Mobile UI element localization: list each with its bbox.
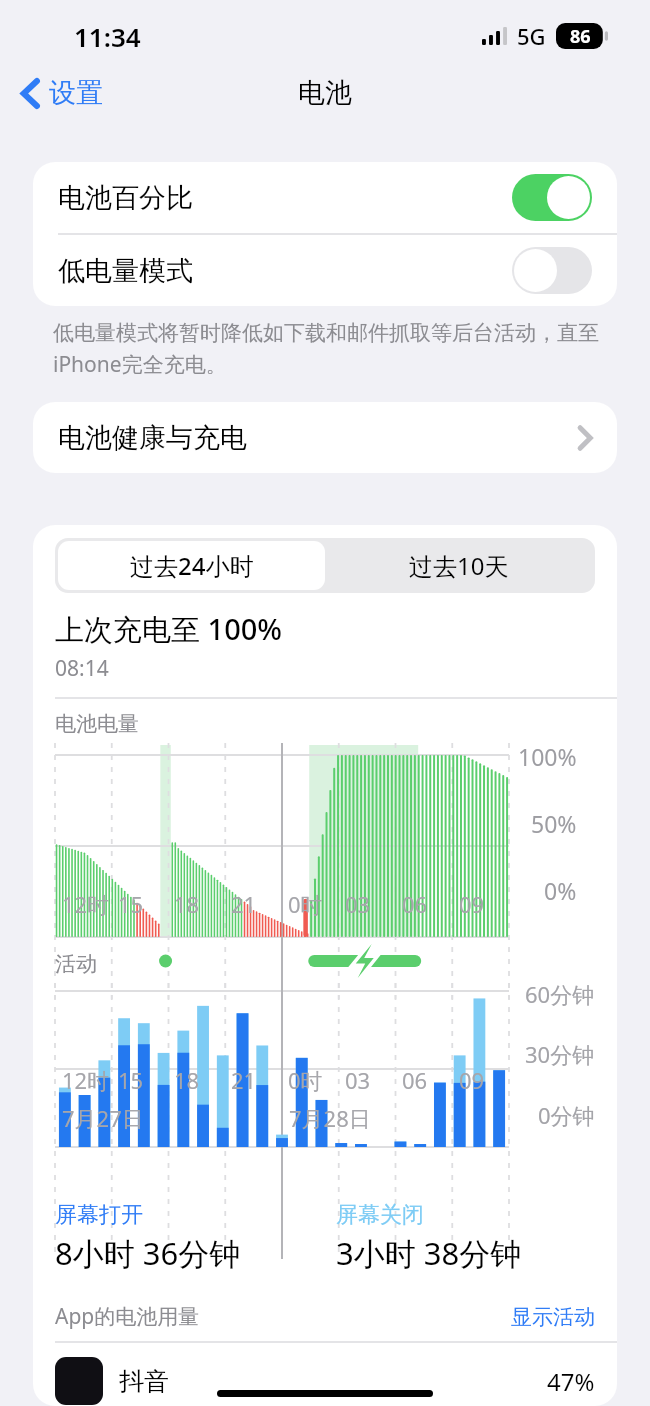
staticText: App的电池用量: [55, 1302, 511, 1331]
staticText: 8小时 36分钟: [55, 1232, 241, 1274]
staticText: 3小时 38分钟: [336, 1232, 522, 1274]
staticText: 21: [231, 1065, 257, 1095]
staticText: 03: [345, 1065, 371, 1095]
staticText: 0分钟: [538, 1100, 595, 1130]
button[interactable]: 过去24小时: [58, 541, 325, 590]
staticText: 低电量模式将暂时降低如下载和邮件抓取等后台活动，直至 iPhone完全充电。: [53, 320, 599, 378]
staticText: 50%: [531, 808, 577, 839]
staticText: 08:14: [55, 654, 109, 683]
button[interactable]: 设置: [16, 68, 109, 118]
staticText: 电池电量: [55, 711, 139, 737]
staticText: 屏幕关闭: [336, 1201, 424, 1229]
staticText: 电池: [298, 76, 352, 110]
staticText: 09: [459, 889, 485, 919]
staticText: 30分钟: [525, 1039, 595, 1069]
staticText: 0时: [288, 1065, 323, 1095]
button[interactable]: 电池健康与充电: [33, 402, 617, 473]
staticText: 7月28日: [289, 1103, 371, 1133]
button[interactable]: 电池百分比: [33, 162, 617, 233]
button[interactable]: 过去10天: [325, 541, 592, 590]
button[interactable]: 显示活动: [511, 1304, 595, 1330]
staticText: 电池健康与充电: [58, 421, 578, 455]
staticText: 活动: [55, 951, 97, 977]
staticText: 0%: [544, 875, 577, 906]
staticText: 47%: [547, 1365, 595, 1398]
staticText: 15: [118, 1065, 144, 1095]
staticText: 15: [118, 889, 144, 919]
staticText: 过去24小时: [130, 549, 254, 582]
staticText: 上次充电至 100%: [55, 609, 283, 649]
staticText: 100%: [518, 741, 577, 772]
staticText: 屏幕打开: [55, 1201, 143, 1229]
staticText: 09: [459, 1065, 485, 1095]
staticText: 18: [174, 1065, 200, 1095]
staticText: 0时: [288, 889, 323, 919]
staticText: 06: [402, 1065, 428, 1095]
button[interactable]: 低电量模式: [512, 247, 592, 294]
staticText: 06: [402, 889, 428, 919]
staticText: 过去10天: [409, 549, 509, 582]
staticText: 5G: [517, 21, 546, 51]
staticText: 86: [570, 24, 591, 49]
staticText: 03: [345, 889, 371, 919]
staticText: 11:34: [74, 19, 141, 54]
staticText: 60分钟: [525, 979, 595, 1009]
staticText: 低电量模式: [58, 254, 512, 288]
staticText: 12时: [62, 889, 110, 919]
button[interactable]: 低电量模式: [33, 235, 617, 306]
staticText: 7月27日: [62, 1103, 144, 1133]
staticText: 18: [174, 889, 200, 919]
staticText: 设置: [49, 76, 103, 110]
staticText: 抖音: [119, 1366, 547, 1397]
staticText: 12时: [62, 1065, 110, 1095]
button[interactable]: 抖音: [55, 1357, 595, 1405]
staticText: 电池百分比: [58, 181, 512, 215]
button[interactable]: 电池百分比: [512, 174, 592, 221]
staticText: 21: [231, 889, 257, 919]
